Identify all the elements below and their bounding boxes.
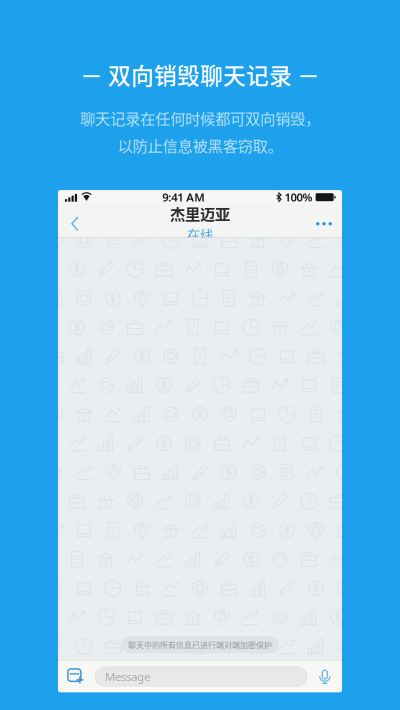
staticText: 9:41 AM xyxy=(162,189,205,205)
staticText: 聊天记录在任何时候都可双向销毁， xyxy=(80,107,320,129)
staticText: 在线 xyxy=(187,225,213,244)
button[interactable]: More options xyxy=(310,204,338,237)
staticText: Message xyxy=(105,669,150,684)
staticText: － 双向销毁聊天记录 － xyxy=(80,58,320,91)
button[interactable]: Back xyxy=(62,204,88,237)
staticText: 以防止信息被黑客窃取。 xyxy=(117,134,282,156)
button[interactable]: Record voice message xyxy=(314,663,336,689)
staticText: 杰里迈亚 xyxy=(170,202,230,224)
button[interactable]: Attach xyxy=(64,663,88,689)
staticText: 聊天中的所有信息已进行端对端加密保护 xyxy=(128,639,272,651)
staticText: 100% xyxy=(285,189,313,205)
